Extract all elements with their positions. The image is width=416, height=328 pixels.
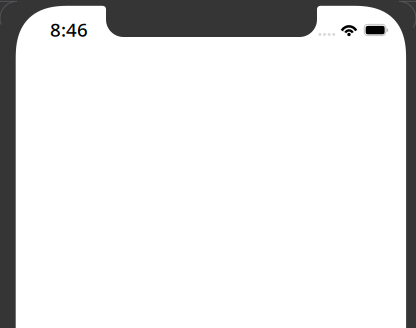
staticText: 8:46 [50, 17, 88, 42]
